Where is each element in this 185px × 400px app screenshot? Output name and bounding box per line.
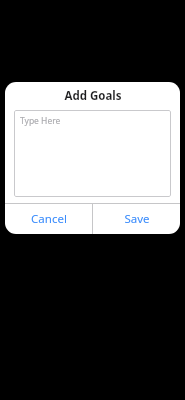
button[interactable]: Save bbox=[93, 204, 180, 234]
button[interactable]: Type Here bbox=[14, 110, 171, 197]
staticText: Save bbox=[124, 211, 150, 227]
staticText: Cancel bbox=[31, 211, 67, 227]
staticText: Add Goals bbox=[64, 88, 122, 104]
staticText: Type Here bbox=[20, 115, 61, 127]
button[interactable]: Cancel bbox=[5, 204, 92, 234]
